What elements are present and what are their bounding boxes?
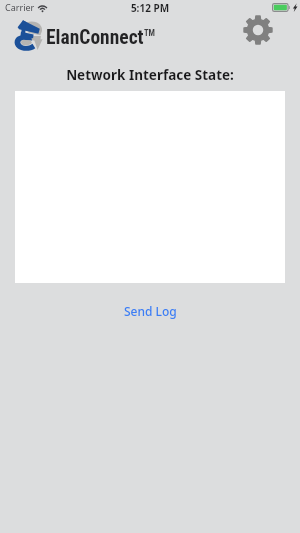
staticText: TM	[144, 28, 156, 38]
staticText: Send Log	[124, 303, 177, 319]
staticText: 5:12 PM	[0, 1, 300, 15]
staticText: Network Interface State:	[0, 66, 300, 84]
button[interactable]: Send Log	[110, 299, 191, 323]
staticText: Carrier	[5, 1, 35, 13]
button[interactable]: Settings	[236, 8, 280, 52]
staticText: ElanConnect	[46, 26, 144, 49]
